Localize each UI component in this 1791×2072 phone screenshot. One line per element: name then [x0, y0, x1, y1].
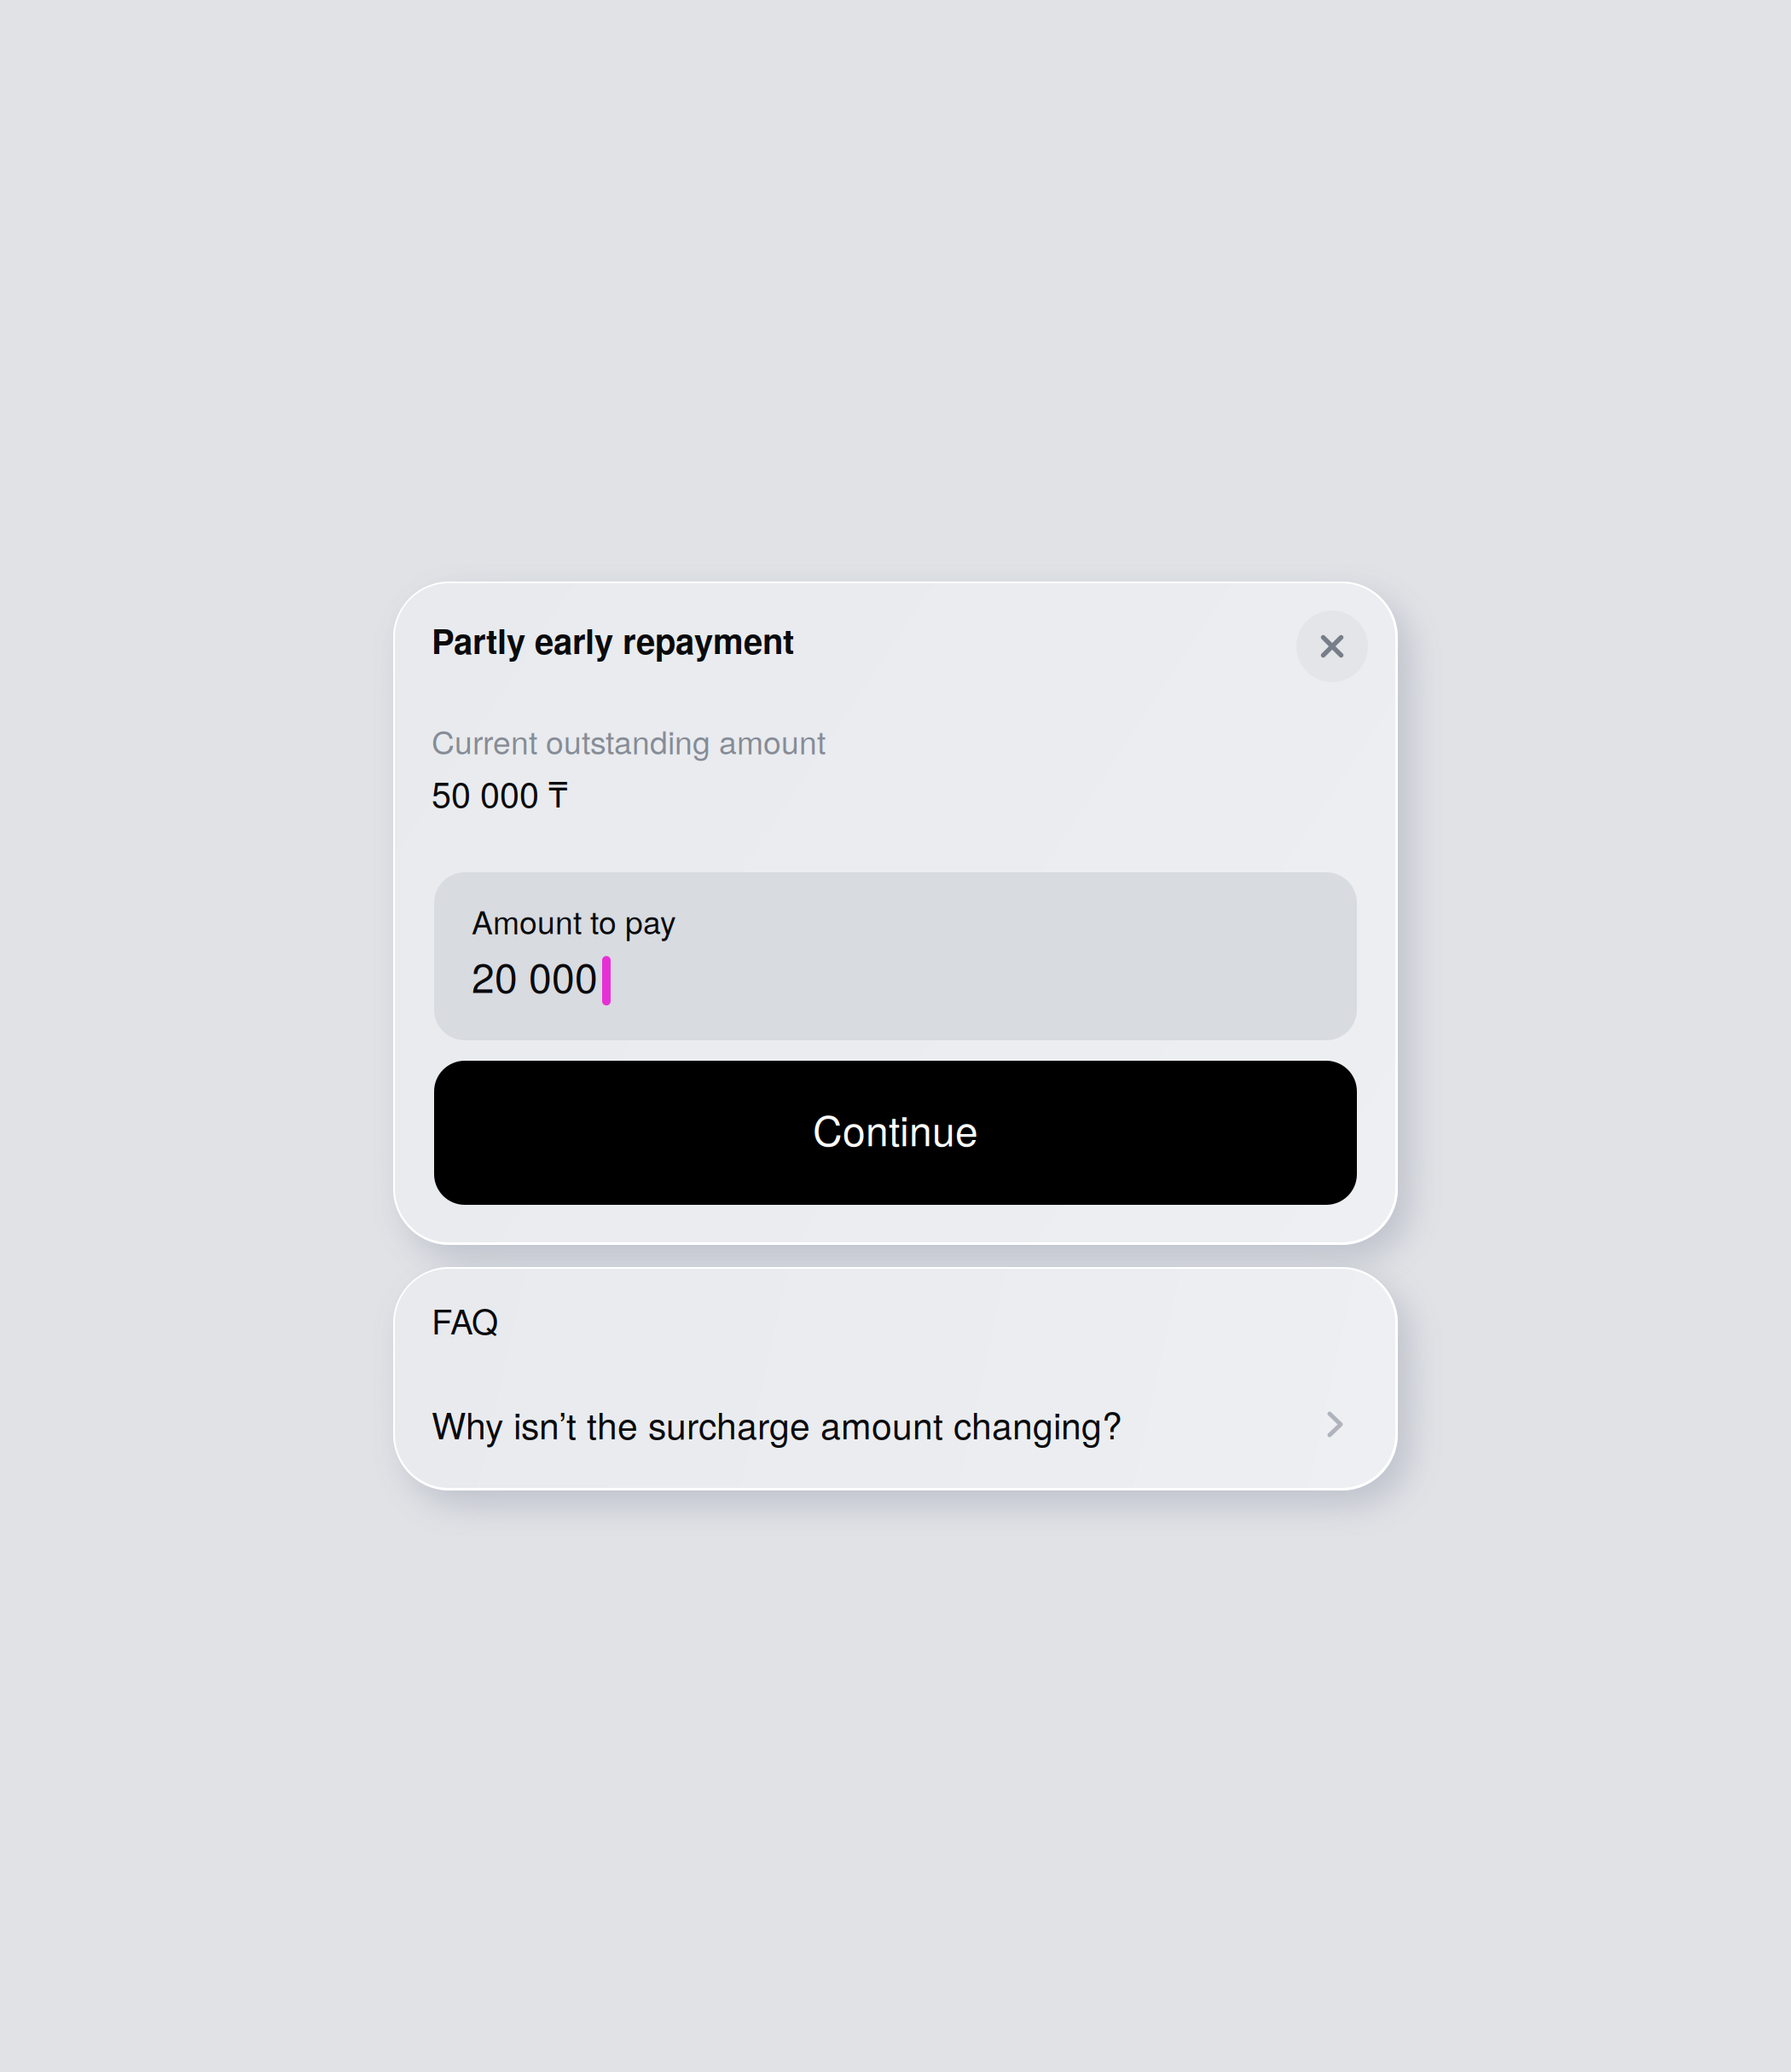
staticText: 20 000 — [472, 946, 598, 1005]
staticText: 50 000 ₸ — [432, 767, 568, 818]
staticText: Current outstanding amount — [432, 718, 826, 764]
button[interactable]: Why isn’t the surcharge amount changing? — [432, 1395, 1354, 1438]
staticText: Partly early repayment — [432, 616, 794, 664]
button[interactable]: Close — [1296, 611, 1368, 682]
button[interactable]: Continue — [434, 1061, 1357, 1205]
staticText: FAQ — [432, 1295, 498, 1344]
staticText: Amount to pay — [472, 898, 676, 943]
staticText: Continue — [813, 1099, 978, 1158]
staticText: Why isn’t the surcharge amount changing? — [432, 1398, 1122, 1450]
